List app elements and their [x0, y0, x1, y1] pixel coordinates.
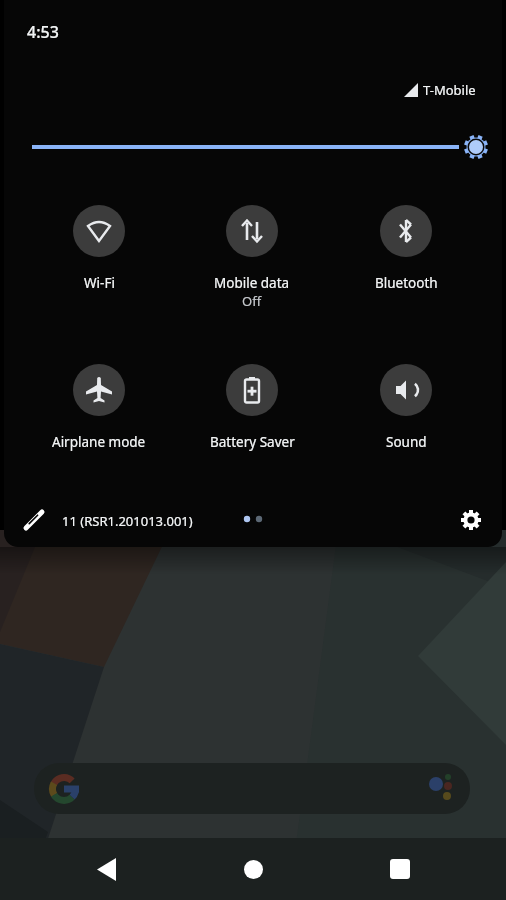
staticText: 4:53	[27, 21, 59, 43]
button[interactable]	[4, 129, 502, 165]
staticText: T-Mobile	[423, 81, 476, 99]
staticText: Mobile data	[214, 274, 290, 292]
button[interactable]	[84, 847, 128, 891]
button[interactable]: Wi-Fi	[29, 205, 169, 292]
button[interactable]	[456, 505, 486, 535]
staticText: Bluetooth	[375, 274, 438, 292]
staticText: 11 (RSR1.201013.001)	[62, 512, 193, 530]
button[interactable]	[34, 763, 470, 814]
staticText: Off	[242, 292, 262, 310]
button[interactable]: Bluetooth	[336, 205, 476, 292]
button[interactable]: Sound	[336, 364, 476, 451]
button[interactable]: Airplane mode	[29, 364, 169, 451]
staticText: Wi-Fi	[84, 274, 115, 292]
staticText: Airplane mode	[52, 433, 146, 451]
button[interactable]	[22, 508, 46, 532]
staticText: Battery Saver	[210, 433, 295, 451]
staticText: Sound	[386, 433, 427, 451]
button[interactable]	[231, 847, 275, 891]
button[interactable]: Battery Saver	[182, 364, 322, 451]
button[interactable]: Mobile data	[182, 205, 322, 310]
button[interactable]	[378, 847, 422, 891]
